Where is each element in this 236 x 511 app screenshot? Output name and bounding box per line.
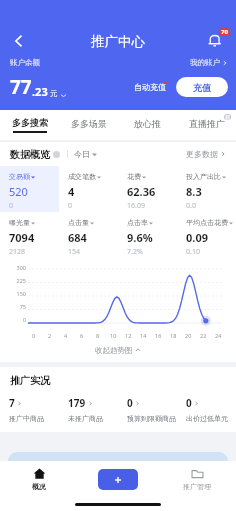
staticText: 出价过低单元 bbox=[186, 414, 228, 423]
button[interactable]: 投入产出比 bbox=[177, 166, 236, 212]
staticText: 225 bbox=[16, 277, 26, 284]
staticText: 元 bbox=[50, 89, 58, 98]
button[interactable]: 收起趋势图 bbox=[0, 341, 236, 359]
staticText: 2 bbox=[48, 332, 52, 339]
staticText: 7.2% bbox=[127, 247, 143, 257]
staticText: 18 bbox=[170, 332, 177, 339]
staticText: 0 bbox=[186, 396, 192, 410]
staticText: 520 bbox=[9, 184, 28, 199]
staticText: 曝光量 bbox=[9, 218, 30, 227]
button[interactable]: 点击率 bbox=[118, 212, 177, 258]
staticText: 300 bbox=[16, 264, 26, 271]
button[interactable]: 推广管理 bbox=[157, 461, 236, 497]
button[interactable]: 充值 bbox=[176, 77, 228, 97]
staticText: 154 bbox=[68, 247, 81, 257]
staticText: 20 bbox=[185, 332, 192, 339]
staticText: 今日 bbox=[74, 149, 90, 159]
staticText: 10 bbox=[110, 332, 117, 339]
button[interactable]: 曝光量 bbox=[0, 212, 59, 258]
staticText: 新 bbox=[225, 114, 230, 120]
staticText: 多多场景 bbox=[71, 118, 107, 129]
button[interactable]: 多多搜索 bbox=[0, 110, 59, 140]
staticText: 2128 bbox=[9, 247, 26, 257]
staticText: 7094 bbox=[9, 230, 35, 245]
staticText: 充值 bbox=[193, 82, 211, 93]
staticText: 未推广商品 bbox=[68, 414, 103, 423]
button[interactable]: 我的账户 bbox=[190, 58, 228, 67]
staticText: 放心推 bbox=[134, 118, 161, 129]
button[interactable]: 0 bbox=[118, 396, 177, 423]
button[interactable]: 交易额 bbox=[0, 166, 59, 212]
staticText: 直播推广 bbox=[189, 118, 225, 129]
staticText: 6 bbox=[80, 332, 84, 339]
staticText: 我的账户 bbox=[190, 58, 220, 67]
staticText: 推广实况 bbox=[10, 374, 50, 387]
staticText: 0 bbox=[9, 201, 14, 211]
staticText: 4 bbox=[64, 332, 68, 339]
staticText: 推广中心 bbox=[91, 33, 145, 50]
button[interactable]: 花费 bbox=[118, 166, 177, 212]
button[interactable]: 77 bbox=[10, 74, 67, 100]
staticText: 75 bbox=[19, 303, 26, 310]
staticText: 12 bbox=[125, 332, 132, 339]
staticText: 24 bbox=[215, 332, 222, 339]
staticText: 8 bbox=[96, 332, 100, 339]
staticText: 70 bbox=[221, 28, 228, 36]
staticText: 更多数据 bbox=[186, 149, 218, 159]
staticText: 8.3 bbox=[186, 184, 202, 199]
staticText: 推广管理 bbox=[183, 482, 211, 491]
button[interactable]: 概况 bbox=[0, 461, 78, 497]
staticText: 多多搜索 bbox=[12, 117, 48, 128]
button[interactable]: 7 bbox=[0, 396, 59, 423]
staticText: 概况 bbox=[32, 482, 46, 491]
button[interactable]: 179 bbox=[59, 396, 118, 423]
button[interactable]: 0 bbox=[177, 396, 236, 423]
staticText: 14 bbox=[140, 332, 147, 339]
button[interactable]: 放心推 bbox=[118, 110, 177, 140]
staticText: 成交笔数 bbox=[68, 172, 96, 181]
staticText: 交易额 bbox=[9, 172, 30, 181]
button[interactable]: Notifications bbox=[204, 29, 228, 53]
staticText: 0 bbox=[32, 332, 36, 339]
staticText: 0 bbox=[22, 316, 26, 323]
staticText: 点击率 bbox=[127, 218, 148, 227]
button[interactable]: 点击量 bbox=[59, 212, 118, 258]
staticText: 16 bbox=[155, 332, 162, 339]
staticText: 7 bbox=[9, 396, 15, 410]
staticText: 数据概览 bbox=[10, 148, 50, 161]
staticText: 投入产出比 bbox=[186, 172, 221, 181]
staticText: 花费 bbox=[127, 172, 141, 181]
button[interactable]: Back bbox=[6, 28, 32, 54]
staticText: 收起趋势图 bbox=[95, 346, 133, 355]
staticText: 77 bbox=[10, 74, 32, 100]
button[interactable]: 直播推广 bbox=[177, 110, 236, 140]
staticText: 自动充值 bbox=[134, 82, 166, 92]
staticText: 推广中商品 bbox=[9, 414, 44, 423]
staticText: 684 bbox=[68, 230, 87, 245]
staticText: 150 bbox=[16, 290, 26, 297]
button[interactable]: 更多数据 bbox=[186, 149, 226, 159]
staticText: .23 bbox=[32, 84, 48, 99]
staticText: 0.10 bbox=[186, 247, 200, 257]
staticText: 4 bbox=[68, 184, 75, 199]
button[interactable]: Add bbox=[98, 469, 138, 490]
button[interactable]: 多多场景 bbox=[59, 110, 118, 140]
staticText: 账户余额 bbox=[10, 58, 40, 67]
staticText: 0.09 bbox=[186, 230, 208, 245]
staticText: 62.36 bbox=[127, 184, 156, 199]
staticText: 22 bbox=[200, 332, 207, 339]
button[interactable]: 今日 bbox=[74, 149, 97, 159]
staticText: 0 bbox=[127, 396, 133, 410]
button[interactable]: 平均点击花费 bbox=[177, 212, 236, 258]
staticText: 平均点击花费 bbox=[186, 218, 228, 227]
staticText: 9.6% bbox=[127, 230, 153, 245]
button[interactable]: 成交笔数 bbox=[59, 166, 118, 212]
staticText: 0 bbox=[68, 201, 73, 211]
staticText: 点击量 bbox=[68, 218, 89, 227]
staticText: 0.0 bbox=[186, 201, 196, 211]
button[interactable]: 自动充值 bbox=[131, 79, 169, 95]
staticText: 预算到限额商品 bbox=[127, 414, 176, 423]
staticText: 179 bbox=[68, 396, 86, 410]
staticText: 16.09 bbox=[127, 201, 145, 211]
